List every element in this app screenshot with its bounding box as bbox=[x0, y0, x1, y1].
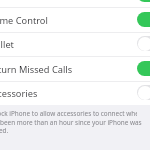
staticText: Wallet bbox=[0, 38, 14, 51]
button[interactable] bbox=[0, 81, 150, 105]
button[interactable] bbox=[0, 32, 150, 56]
staticText: Accessories bbox=[0, 87, 38, 100]
button[interactable]: Switch off bbox=[137, 85, 150, 100]
staticText: Unlock iPhone to allow accessories to co… bbox=[0, 109, 137, 118]
staticText: Home Control bbox=[0, 14, 48, 27]
button[interactable]: Switch on bbox=[137, 61, 150, 76]
staticText: Return Missed Calls bbox=[0, 63, 73, 76]
button[interactable]: Switch on bbox=[137, 0, 150, 2]
button[interactable]: Switch off bbox=[137, 36, 150, 51]
button[interactable]: Switch on bbox=[137, 12, 150, 27]
button[interactable] bbox=[0, 56, 150, 80]
button[interactable] bbox=[0, 7, 150, 31]
staticText: been more than an hour since your iPhone… bbox=[0, 118, 150, 127]
staticText: locked. bbox=[0, 126, 137, 135]
